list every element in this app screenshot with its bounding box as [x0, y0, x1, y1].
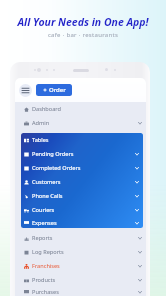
button[interactable]: Dashboard: [15, 102, 146, 116]
button[interactable]: Pending Orders: [21, 147, 143, 161]
button[interactable]: Expenses: [21, 217, 143, 228]
button[interactable]: Completed Orders: [21, 161, 143, 175]
button[interactable]: Couriers: [21, 203, 143, 217]
staticText: Phone Calls: [32, 192, 63, 200]
staticText: Reports: [32, 234, 53, 242]
staticText: Customers: [32, 178, 61, 186]
staticText: Purchases: [32, 288, 59, 296]
button[interactable]: Menu: [19, 84, 32, 97]
button[interactable]: Purchases: [15, 287, 146, 296]
staticText: Products: [32, 276, 56, 284]
button[interactable]: Phone Calls: [21, 189, 143, 203]
staticText: Expenses: [32, 219, 57, 227]
staticText: Order: [49, 86, 66, 94]
staticText: Completed Orders: [32, 164, 81, 172]
staticText: cafe · bar · restaurants: [0, 31, 166, 39]
button[interactable]: Log Reports: [15, 245, 146, 259]
staticText: All Your Needs in One App!: [0, 15, 166, 29]
staticText: Pending Orders: [32, 150, 74, 158]
button[interactable]: Admin: [15, 116, 146, 130]
staticText: Dashboard: [32, 105, 61, 113]
staticText: Tables: [32, 136, 49, 144]
button[interactable]: Products: [15, 273, 146, 287]
staticText: Couriers: [32, 206, 55, 214]
button[interactable]: Tables: [21, 133, 143, 147]
staticText: Log Reports: [32, 248, 64, 256]
button[interactable]: Franchises: [15, 259, 146, 273]
staticText: Admin: [32, 119, 50, 127]
button[interactable]: Reports: [15, 231, 146, 245]
button[interactable]: Customers: [21, 175, 143, 189]
button[interactable]: Order: [36, 84, 72, 96]
staticText: Franchises: [32, 262, 60, 270]
